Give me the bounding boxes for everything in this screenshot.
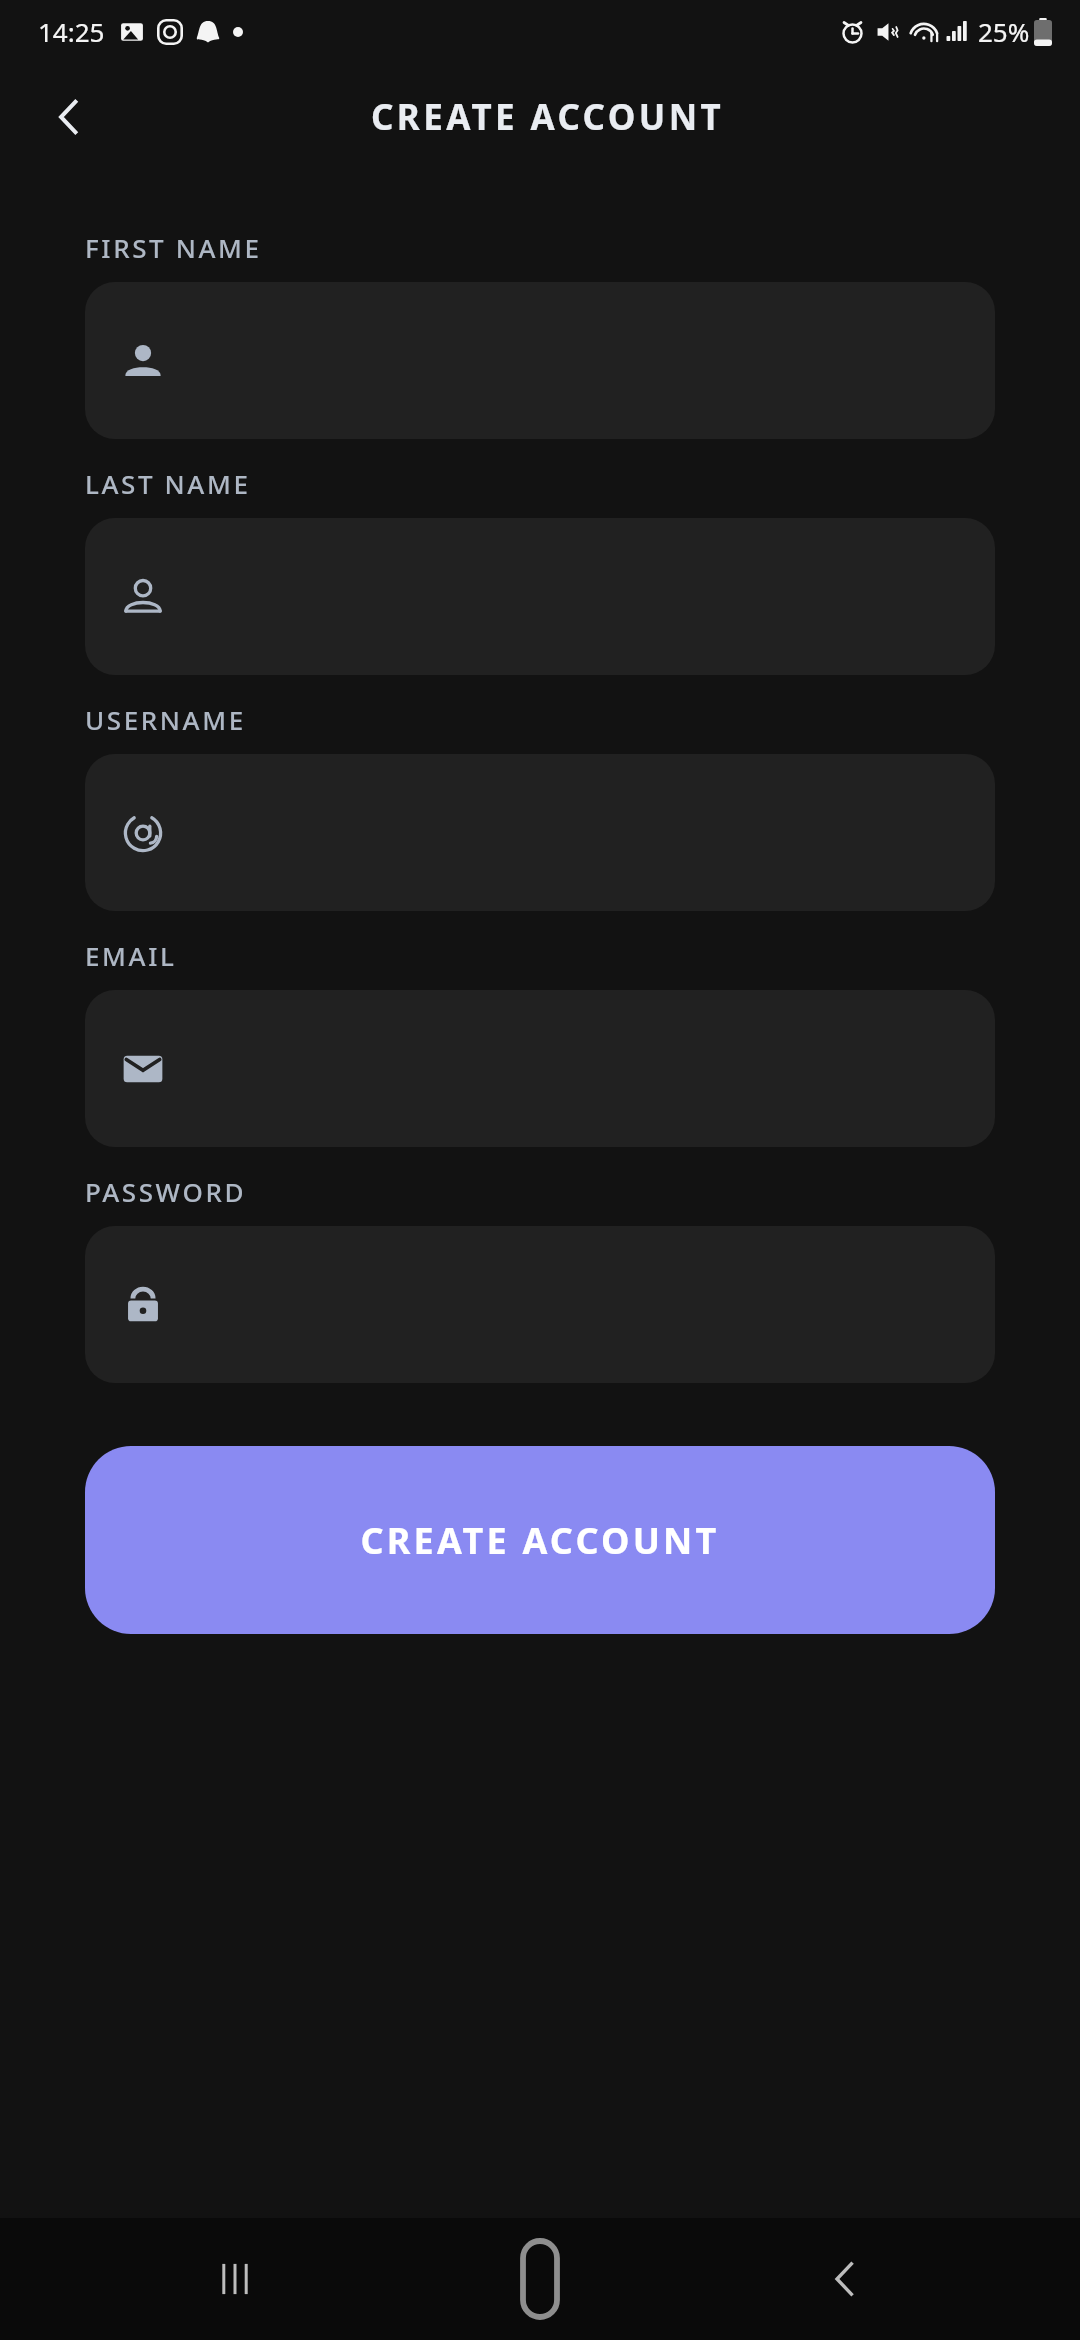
button[interactable]: Back — [800, 2234, 890, 2324]
button[interactable] — [85, 990, 995, 1147]
button[interactable]: Home — [495, 2234, 585, 2324]
button[interactable]: Recent apps — [190, 2234, 280, 2324]
button[interactable]: Back — [30, 78, 108, 156]
staticText: CREATE ACCOUNT — [360, 1516, 720, 1565]
staticText: USERNAME — [85, 702, 246, 737]
staticText: FIRST NAME — [85, 230, 262, 265]
staticText: EMAIL — [85, 938, 177, 973]
button[interactable] — [85, 282, 995, 439]
button[interactable] — [85, 754, 995, 911]
staticText: LAST NAME — [85, 466, 251, 501]
button[interactable] — [85, 1226, 995, 1383]
button[interactable]: CREATE ACCOUNT — [85, 1446, 995, 1634]
staticText: 14:25 — [38, 14, 105, 49]
staticText: CREATE ACCOUNT — [371, 93, 725, 141]
button[interactable] — [85, 518, 995, 675]
staticText: 25% — [978, 14, 1030, 49]
staticText: PASSWORD — [85, 1174, 247, 1209]
